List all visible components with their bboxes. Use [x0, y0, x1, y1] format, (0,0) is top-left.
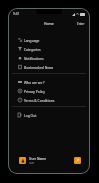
button[interactable]: Who are we ?	[9, 77, 89, 86]
button[interactable]: Enter	[73, 20, 89, 28]
button[interactable]: Privacy Policy	[9, 86, 89, 95]
staticText: user	[29, 161, 35, 165]
button[interactable]: Log Out	[9, 110, 89, 119]
staticText: Bookmarked News	[24, 65, 54, 69]
staticText: User Name	[29, 157, 47, 161]
staticText: 9:41	[13, 12, 20, 16]
staticText: Language	[24, 38, 40, 42]
button[interactable]: Bookmarked News	[9, 62, 89, 71]
staticText: Categories	[24, 47, 41, 51]
staticText: Terms & Conditions	[24, 98, 55, 102]
button[interactable]: Language	[9, 35, 89, 44]
staticText: Privacy Policy	[24, 89, 45, 93]
button[interactable]: User Name	[9, 151, 89, 173]
staticText: Log Out	[24, 113, 37, 117]
staticText: Notifications	[24, 56, 44, 60]
button[interactable]: Categories	[9, 44, 89, 53]
button[interactable]: Notifications	[9, 53, 89, 62]
staticText: Home	[44, 21, 54, 26]
button[interactable]: Edit profile	[74, 157, 81, 164]
button[interactable]: Terms & Conditions	[9, 95, 89, 104]
staticText: Who are we ?	[24, 80, 45, 84]
staticText: Enter	[77, 22, 85, 26]
